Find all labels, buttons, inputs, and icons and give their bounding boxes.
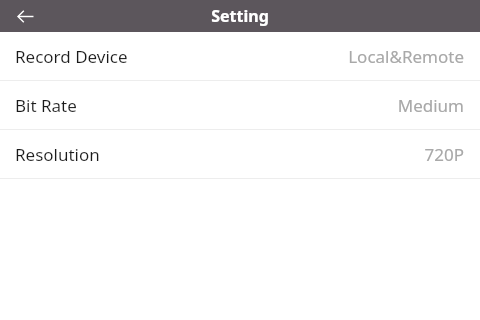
staticText: Bit Rate [15,94,77,117]
button[interactable]: Record Device [0,32,480,80]
staticText: Medium [397,94,464,117]
staticText: Local&Remote [348,45,464,68]
staticText: Record Device [15,45,128,68]
button[interactable]: Back [13,4,37,28]
staticText: Resolution [15,143,100,166]
staticText: Setting [211,5,269,27]
button[interactable]: Resolution [0,130,480,178]
staticText: 720P [424,143,464,166]
button[interactable]: Bit Rate [0,81,480,129]
